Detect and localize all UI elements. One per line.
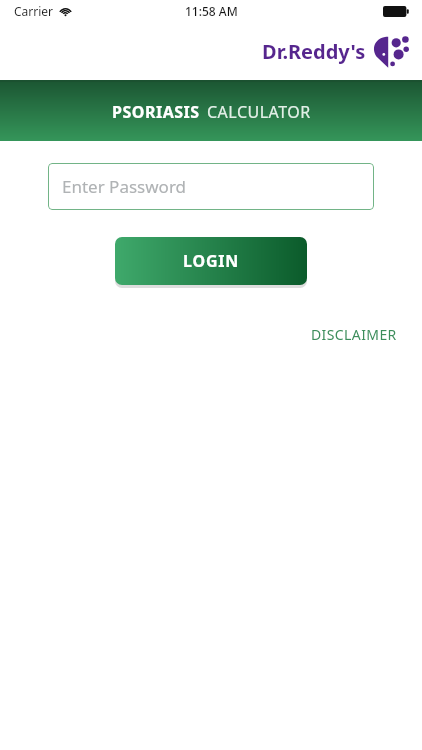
staticText: Enter Password [62, 175, 187, 198]
staticText: CALCULATOR [207, 101, 311, 123]
staticText: Dr.Reddy's [262, 38, 366, 65]
staticText: 11:58 AM [185, 3, 238, 19]
button[interactable]: Enter Password [48, 163, 374, 210]
button[interactable]: Dr. Reddy's logo [262, 34, 410, 68]
button[interactable]: LOGIN [115, 237, 307, 285]
button[interactable]: DISCLAIMER [307, 321, 401, 348]
staticText: LOGIN [183, 250, 240, 272]
staticText: PSORIASIS [112, 101, 200, 123]
staticText: DISCLAIMER [311, 325, 397, 344]
staticText: Carrier [14, 3, 54, 19]
